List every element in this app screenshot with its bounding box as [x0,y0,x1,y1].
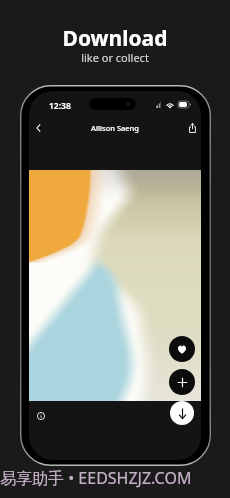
staticText: 易享助手 • EEDSHZJZ.COM [0,467,192,489]
staticText: 12:38 [49,100,71,112]
button[interactable]: Download [170,401,194,425]
button[interactable]: Add [169,369,195,395]
button[interactable]: Back [29,119,47,137]
staticText: Download [0,24,230,53]
staticText: Allison Saeng [29,123,201,133]
button[interactable]: Info [33,408,49,424]
button[interactable]: Like [169,336,195,362]
staticText: like or collect [0,50,230,65]
button[interactable]: Share [184,120,200,136]
